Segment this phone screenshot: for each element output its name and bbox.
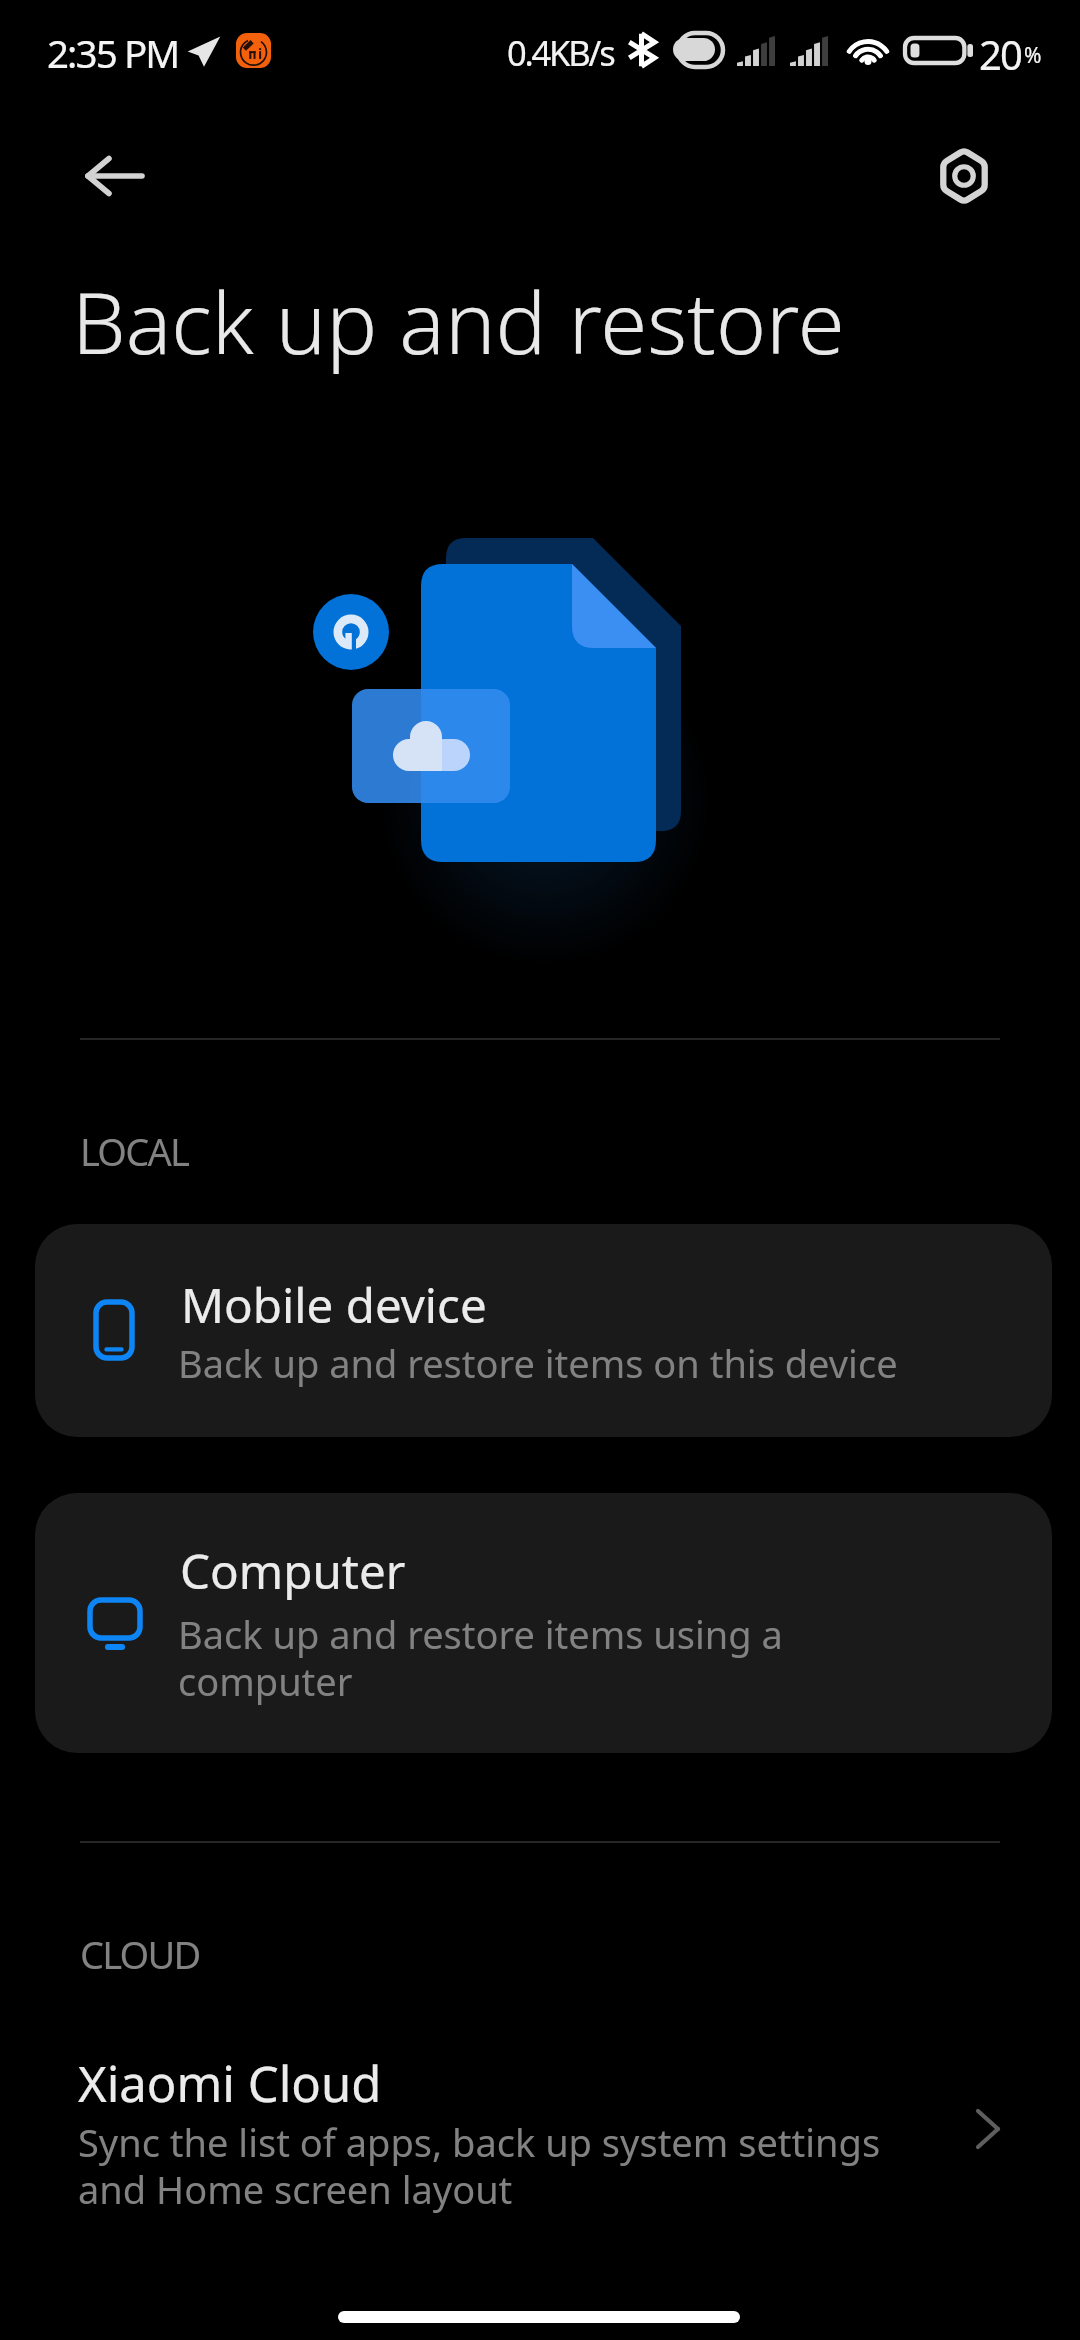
- button[interactable]: Back: [60, 126, 164, 226]
- staticText: Computer: [180, 1538, 406, 1603]
- staticText: 0.4KB/s: [507, 29, 614, 76]
- staticText: CLOUD: [80, 1928, 200, 1980]
- staticText: Xiaomi Cloud: [78, 2050, 382, 2117]
- staticText: 2:35 PM: [47, 27, 179, 79]
- staticText: Mobile device: [181, 1272, 487, 1337]
- staticText: Back up and restore items on this device: [178, 1337, 898, 1389]
- staticText: %: [1024, 41, 1042, 70]
- button[interactable]: Settings: [914, 126, 1014, 226]
- staticText: Back up and restore: [72, 263, 845, 379]
- button[interactable]: Xiaomi Cloud: [0, 2030, 1080, 2220]
- staticText: Sync the list of apps, back up system se…: [78, 2116, 881, 2215]
- button[interactable]: Mobile device: [35, 1224, 1052, 1437]
- staticText: 20: [979, 27, 1021, 81]
- staticText: LOCAL: [80, 1125, 189, 1177]
- staticText: Back up and restore items using a comput…: [178, 1608, 783, 1707]
- button[interactable]: Computer: [35, 1493, 1052, 1753]
